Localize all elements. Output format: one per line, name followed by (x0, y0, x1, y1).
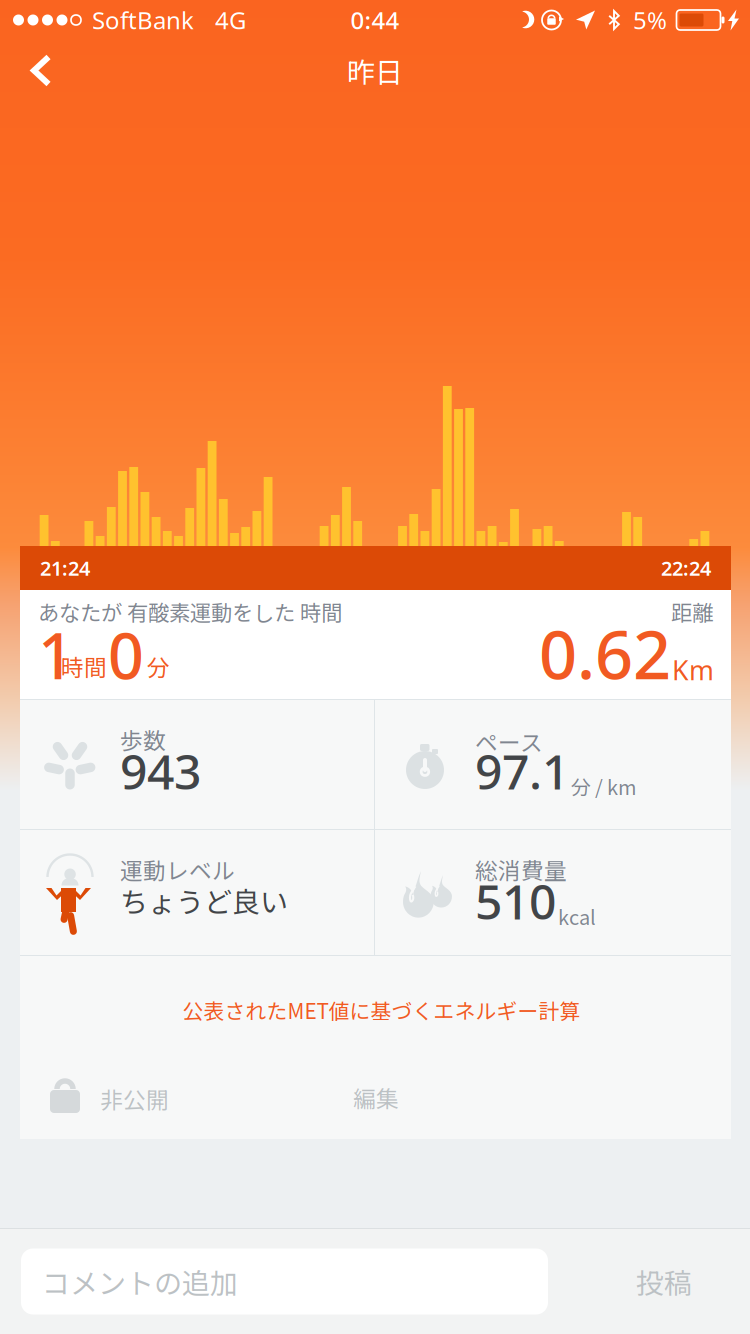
staticText: ちょうど良い (120, 880, 288, 920)
staticText: 0.62 (539, 609, 671, 697)
staticText: SoftBank (92, 4, 194, 36)
staticText: 0 (108, 613, 144, 696)
staticText: 非公開 (100, 1082, 169, 1115)
staticText: 時間 (61, 650, 107, 682)
staticText: 21:24 (40, 555, 90, 581)
button[interactable]: 運動レベル (20, 830, 374, 955)
button[interactable]: Back (0, 41, 82, 100)
staticText: Km (672, 652, 714, 687)
button[interactable]: 総消費量 (375, 830, 731, 955)
staticText: 公表されたMET値に基づくエネルギー計算 (182, 995, 580, 1025)
button[interactable]: 編集 (331, 1069, 421, 1126)
staticText: 距離 (671, 596, 713, 627)
staticText: 分 (147, 650, 170, 682)
staticText: 運動レベル (120, 853, 235, 886)
staticText: ペース (475, 725, 543, 758)
button[interactable]: 歩数 (20, 700, 374, 829)
button[interactable]: コメントの追加 (21, 1248, 548, 1314)
staticText: 5% (633, 4, 667, 36)
button[interactable]: 非公開 (42, 1068, 177, 1123)
staticText: コメントの追加 (42, 1261, 238, 1302)
staticText: 97.1 (475, 739, 569, 803)
staticText: 1 (38, 613, 74, 696)
staticText: 歩数 (120, 723, 166, 756)
staticText: 0:44 (350, 4, 399, 36)
staticText: 4G (215, 4, 246, 36)
staticText: 投稿 (636, 1261, 692, 1302)
staticText: 943 (120, 739, 201, 803)
staticText: kcal (558, 902, 596, 931)
staticText: 22:24 (661, 555, 711, 581)
staticText: 510 (475, 869, 556, 933)
staticText: 編集 (353, 1081, 399, 1114)
staticText: あなたが 有酸素運動をした 時間 (38, 596, 342, 627)
staticText: 昨日 (347, 50, 403, 91)
button[interactable]: ペース (375, 700, 731, 829)
staticText: 総消費量 (475, 853, 567, 886)
staticText: 分 / km (571, 772, 637, 801)
button[interactable]: 公表されたMET値に基づくエネルギー計算 (26, 982, 737, 1038)
button[interactable]: 投稿 (608, 1243, 720, 1320)
